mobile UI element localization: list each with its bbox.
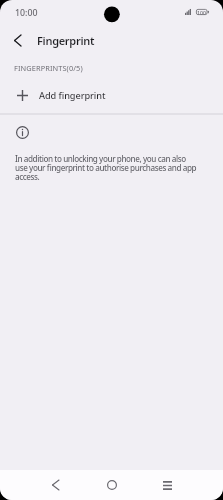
button[interactable]: Back bbox=[3, 26, 31, 54]
staticText: In addition to unlocking your phone, you… bbox=[15, 155, 197, 182]
button[interactable]: Home bbox=[89, 470, 134, 500]
button[interactable]: Add fingerprint bbox=[0, 81, 223, 109]
button[interactable]: Back bbox=[33, 470, 78, 500]
staticText: Add fingerprint bbox=[39, 89, 106, 102]
staticText: Fingerprint bbox=[37, 33, 95, 48]
staticText: 10:00 bbox=[15, 7, 38, 19]
staticText: FINGERPRINTS(0/5) bbox=[14, 63, 83, 73]
button[interactable]: Recent apps bbox=[145, 470, 190, 500]
staticText: 100 bbox=[197, 9, 206, 15]
